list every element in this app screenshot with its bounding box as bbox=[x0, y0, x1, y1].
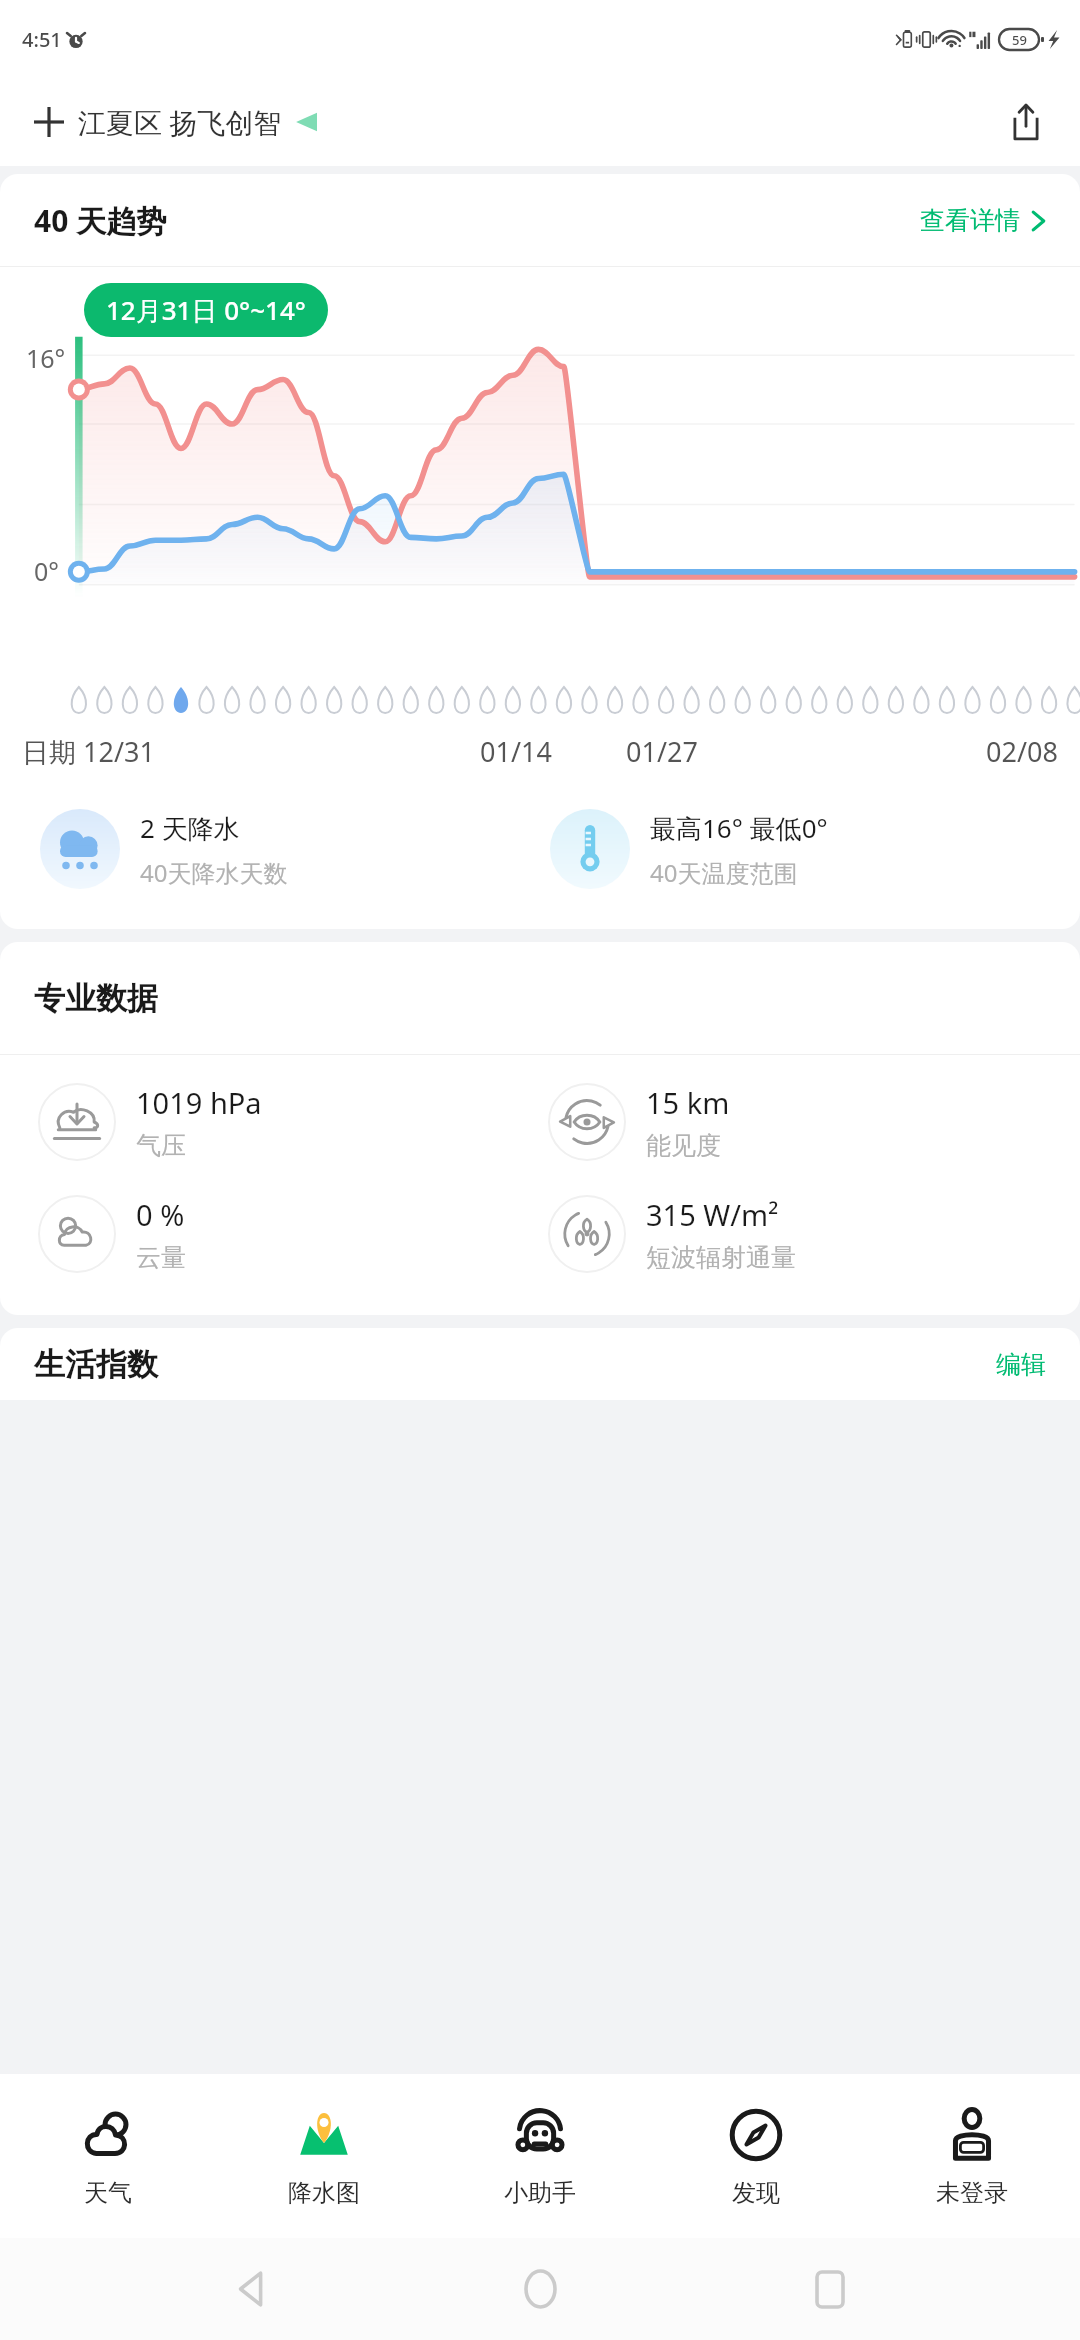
staticText: 40天降水天数 bbox=[140, 856, 288, 889]
button[interactable]: 最高16° 最低0° bbox=[550, 809, 1080, 889]
staticText: 未登录 bbox=[936, 2178, 1008, 2208]
staticText: 小助手 bbox=[504, 2178, 576, 2208]
staticText: 315 W/m² bbox=[646, 1195, 779, 1234]
button[interactable]: 天气 bbox=[0, 2074, 216, 2238]
staticText: 日期 12/31 bbox=[22, 733, 155, 770]
button[interactable]: 未登录 bbox=[864, 2074, 1080, 2238]
button[interactable]: 查看详情 bbox=[920, 205, 1046, 236]
button[interactable]: 编辑 bbox=[996, 1349, 1046, 1380]
staticText: 江夏区 扬飞创智 bbox=[78, 103, 282, 141]
staticText: 16° bbox=[26, 341, 66, 375]
staticText: 云量 bbox=[136, 1242, 186, 1273]
button[interactable]: Back bbox=[212, 2250, 290, 2328]
button[interactable]: 小助手 bbox=[432, 2074, 648, 2238]
button[interactable]: 2 天降水 bbox=[40, 809, 540, 889]
button[interactable]: 发现 bbox=[648, 2074, 864, 2238]
staticText: 短波辐射通量 bbox=[646, 1242, 796, 1273]
staticText: 01/14 bbox=[480, 733, 552, 770]
staticText: 15 km bbox=[646, 1083, 730, 1122]
staticText: 40天温度范围 bbox=[650, 856, 798, 889]
button[interactable]: 1019 hPa bbox=[38, 1083, 540, 1161]
button[interactable]: 12月31日 0°~14° bbox=[84, 283, 328, 337]
button[interactable]: 江夏区 扬飞创智 bbox=[34, 103, 317, 141]
staticText: 能见度 bbox=[646, 1130, 721, 1161]
staticText: 4:51 bbox=[22, 26, 62, 53]
staticText: 1019 hPa bbox=[136, 1083, 262, 1122]
staticText: 最高16° 最低0° bbox=[650, 810, 828, 846]
staticText: 2 天降水 bbox=[140, 810, 240, 846]
staticText: 发现 bbox=[732, 2178, 780, 2208]
button[interactable]: 0 % bbox=[38, 1195, 540, 1273]
staticText: 编辑 bbox=[996, 1349, 1046, 1380]
staticText: 59 bbox=[1012, 31, 1027, 49]
button[interactable]: Share bbox=[998, 94, 1054, 150]
staticText: 查看详情 bbox=[920, 205, 1020, 236]
button[interactable]: 315 W/m² bbox=[548, 1195, 1080, 1273]
staticText: 01/27 bbox=[626, 733, 698, 770]
button[interactable]: 15 km bbox=[548, 1083, 1080, 1161]
button[interactable]: 降水图 bbox=[216, 2074, 432, 2238]
staticText: 天气 bbox=[84, 2178, 132, 2208]
staticText: 专业数据 bbox=[34, 979, 158, 1018]
staticText: 12月31日 0°~14° bbox=[106, 292, 306, 328]
staticText: 0° bbox=[34, 554, 60, 588]
staticText: 降水图 bbox=[288, 2178, 360, 2208]
staticText: 气压 bbox=[136, 1130, 186, 1161]
staticText: 02/08 bbox=[986, 733, 1058, 770]
staticText: 40 天趋势 bbox=[34, 200, 167, 241]
button[interactable]: Home bbox=[501, 2250, 579, 2328]
staticText: 0 % bbox=[136, 1195, 185, 1234]
staticText: 生活指数 bbox=[34, 1345, 158, 1384]
button[interactable]: Recent apps bbox=[791, 2250, 869, 2328]
